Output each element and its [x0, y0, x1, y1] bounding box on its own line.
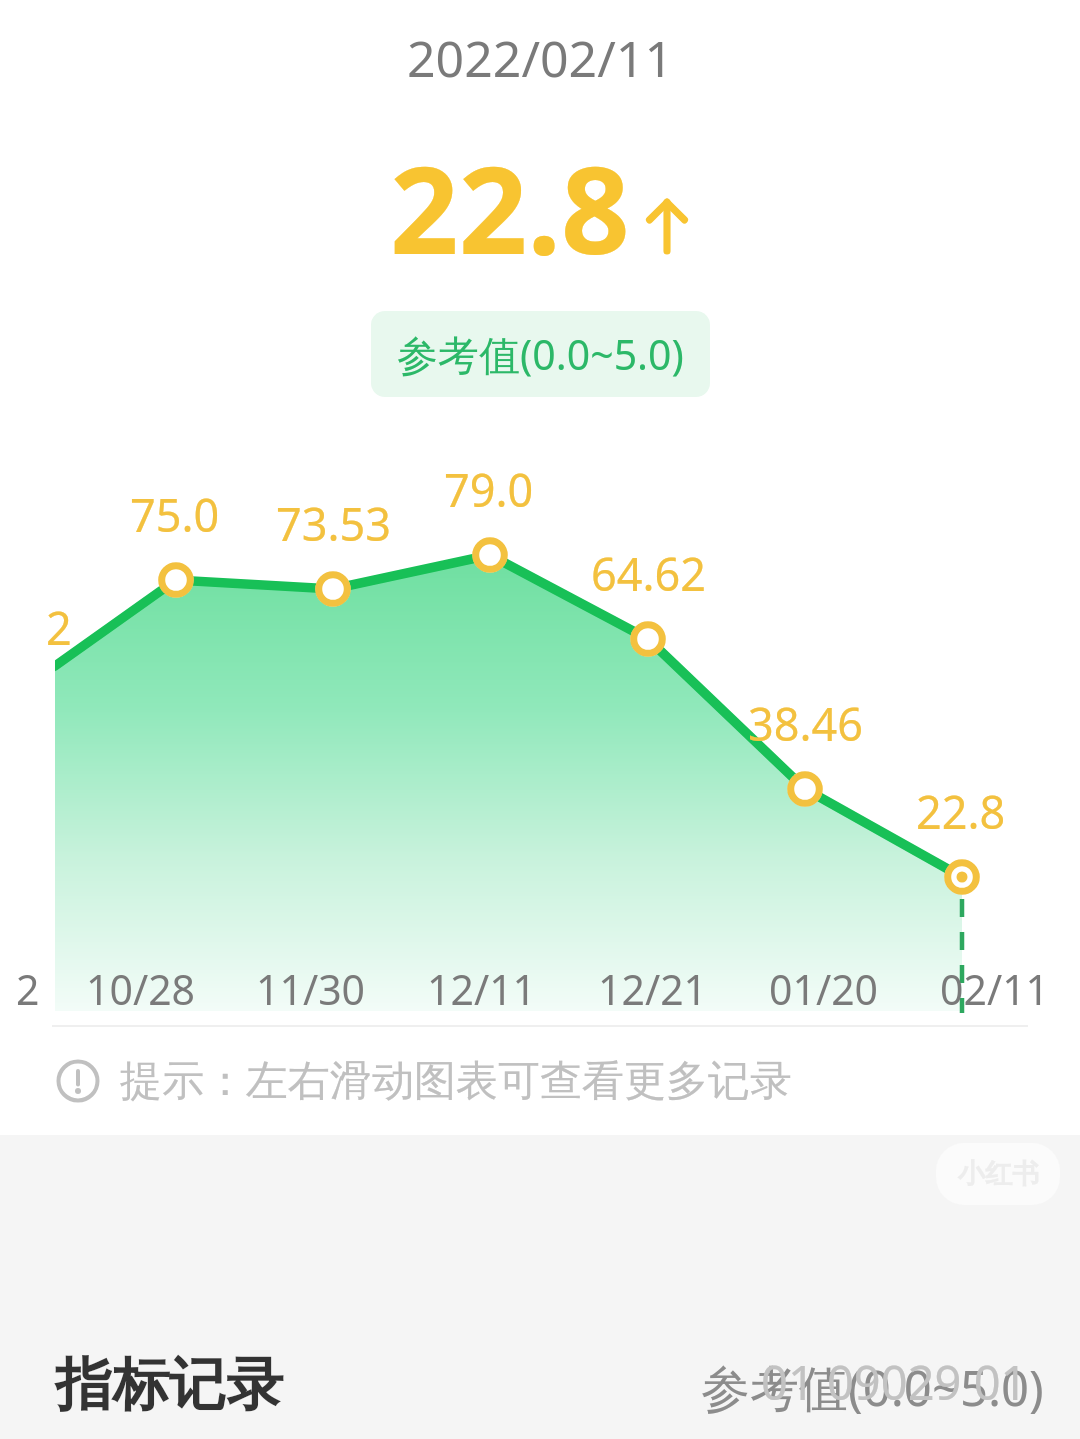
staticText: 2 — [46, 597, 72, 658]
staticText: 12/21 — [598, 961, 708, 1017]
staticText: 2 — [16, 961, 40, 1017]
button[interactable]: 提示：左右滑动图表可查看更多记录 — [0, 1027, 1080, 1135]
button[interactable]: Watermark — [936, 1143, 1060, 1205]
staticText: 参考值(0.0~5.0) — [397, 326, 684, 382]
other: Trend up — [644, 194, 690, 254]
button[interactable]: 75.0 — [0, 455, 1080, 1025]
staticText: 2022/02/11 — [0, 24, 1080, 92]
staticText: 22.8 — [916, 781, 1006, 842]
staticText: 11/30 — [256, 961, 366, 1017]
staticText: 01 09029 01 — [761, 1350, 1028, 1414]
staticText: 10/28 — [86, 961, 196, 1017]
staticText: 02/11 — [940, 961, 1050, 1017]
staticText: 提示：左右滑动图表可查看更多记录 — [120, 1055, 792, 1108]
staticText: 22.8 — [390, 126, 630, 289]
staticText: 01/20 — [769, 961, 879, 1017]
button[interactable]: 参考值(0.0~5.0) — [371, 311, 710, 397]
staticText: 38.46 — [748, 693, 864, 754]
staticText: 79.0 — [444, 459, 534, 520]
staticText: 64.62 — [591, 543, 707, 604]
staticText: 小红书 — [958, 1157, 1039, 1191]
staticText: 73.53 — [276, 493, 392, 554]
staticText: 参考值(0.0~5.0) — [701, 1354, 1044, 1421]
staticText: 75.0 — [130, 484, 220, 545]
staticText: 指标记录 — [55, 1349, 283, 1421]
staticText: 12/11 — [427, 961, 537, 1017]
